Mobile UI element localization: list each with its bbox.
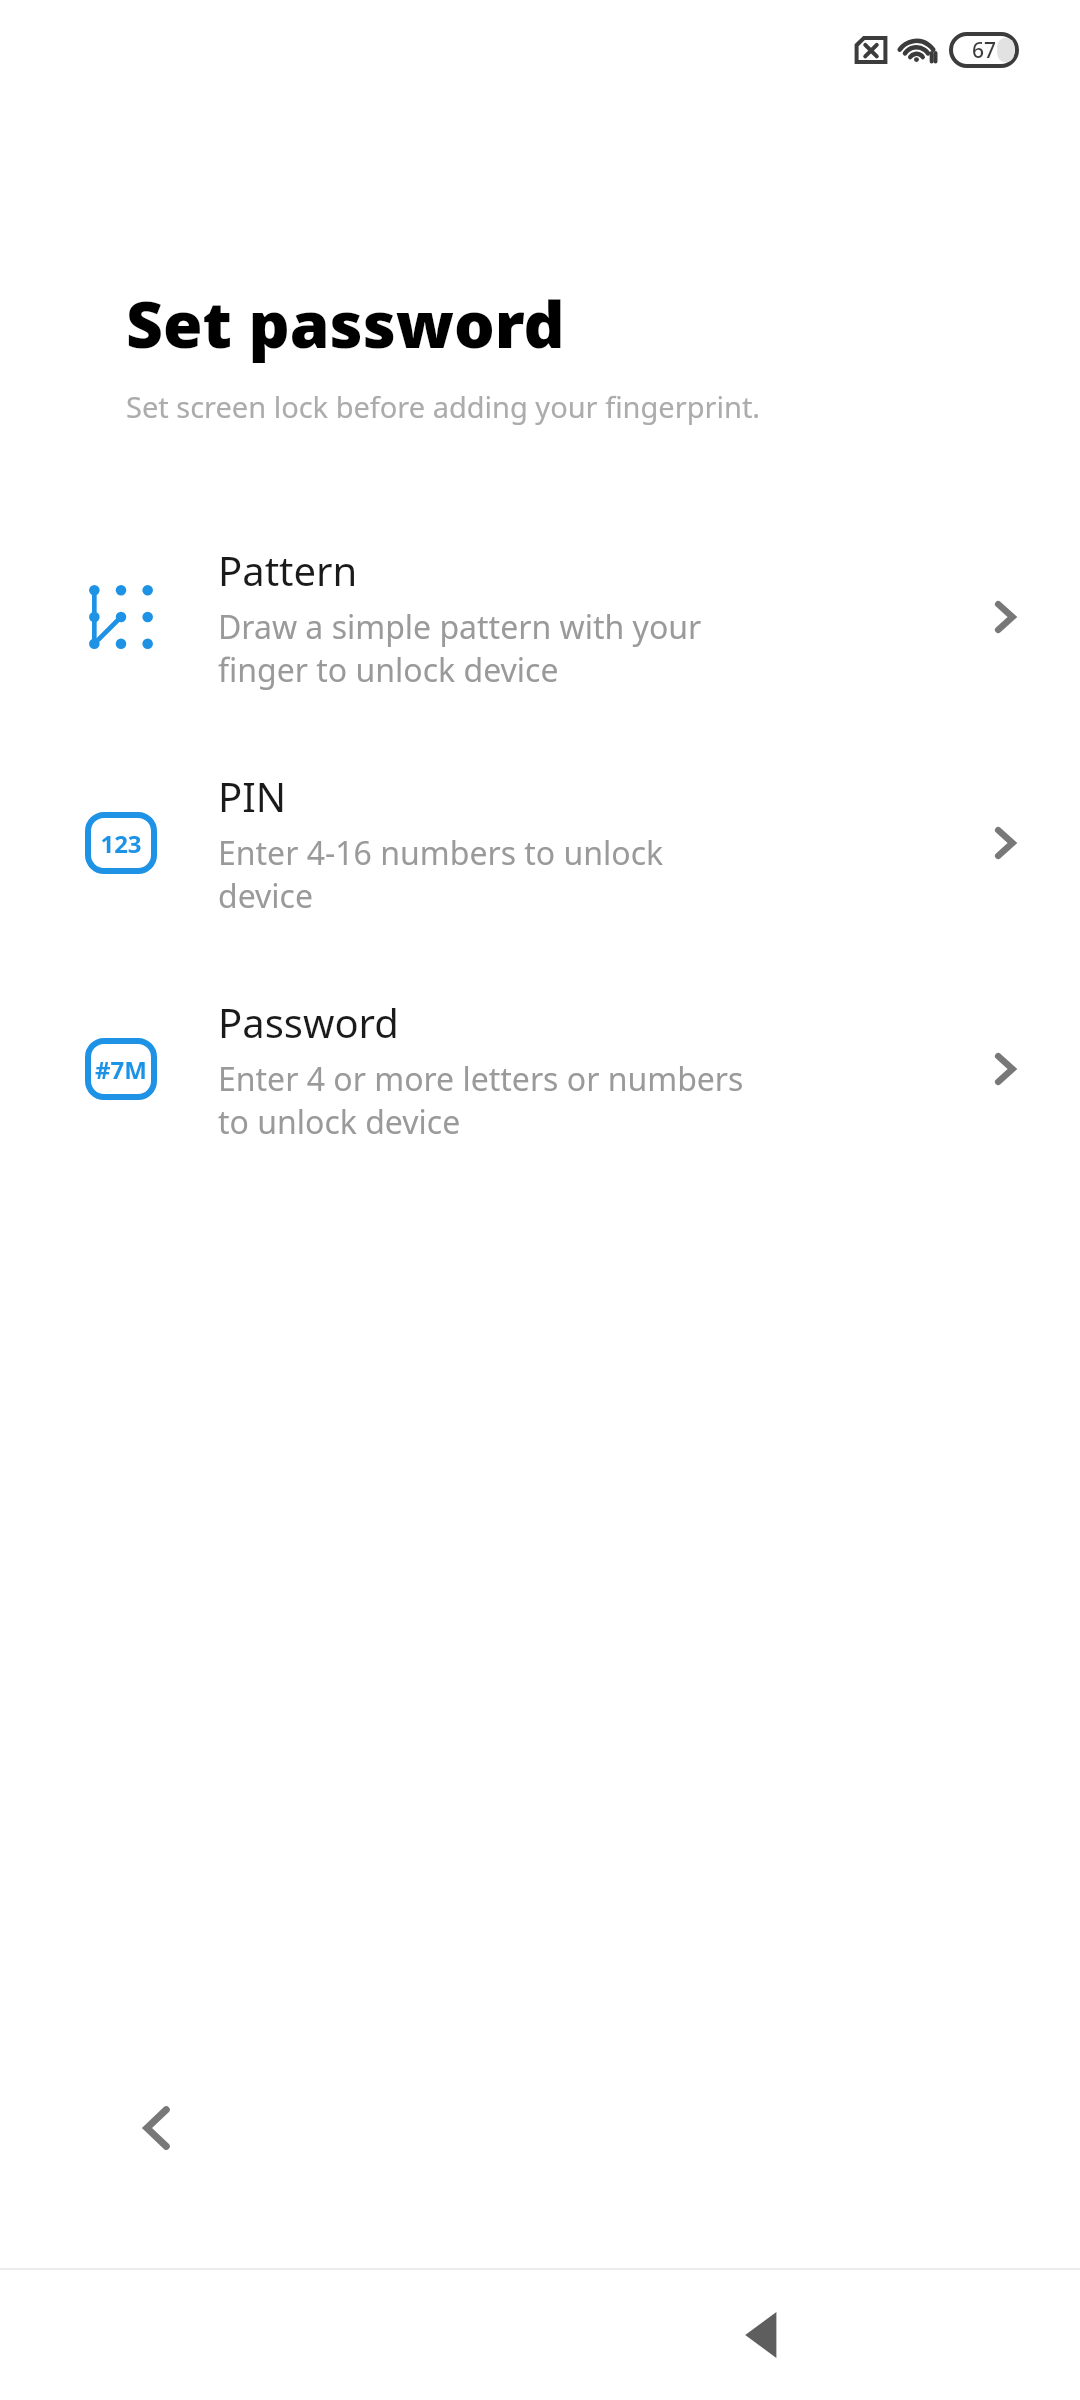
staticText: #7M <box>95 1053 147 1086</box>
button[interactable]: 123 <box>0 748 1080 938</box>
button[interactable]: #7M <box>0 974 1080 1164</box>
staticText: Enter 4-16 numbers to unlock device <box>218 831 664 917</box>
staticText: Set password <box>126 280 565 367</box>
staticText: Password <box>218 995 399 1049</box>
staticText: Pattern <box>218 543 358 597</box>
staticText: Set screen lock before adding your finge… <box>126 387 761 426</box>
staticText: PIN <box>218 769 287 823</box>
button[interactable]: Back <box>108 2078 208 2178</box>
staticText: 67 <box>972 36 997 65</box>
staticText: 123 <box>100 827 142 860</box>
staticText: Draw a simple pattern with your finger t… <box>218 605 702 691</box>
button[interactable]: Pattern <box>0 522 1080 712</box>
staticText: Enter 4 or more letters or numbers to un… <box>218 1057 744 1143</box>
button[interactable]: Back <box>702 2275 822 2395</box>
